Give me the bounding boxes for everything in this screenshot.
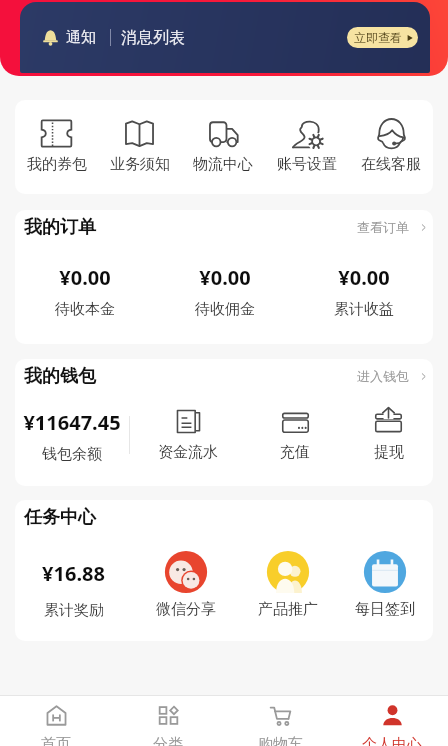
button[interactable]: 分类 bbox=[112, 696, 224, 746]
staticText: 我的钱包 bbox=[24, 365, 96, 388]
staticText: 查看订单 bbox=[357, 219, 409, 235]
staticText: 我的订单 bbox=[24, 216, 96, 239]
button[interactable]: 微信分享 bbox=[132, 548, 239, 619]
staticText: 待收本金 bbox=[55, 300, 115, 319]
button[interactable]: 账号设置 bbox=[265, 117, 349, 174]
staticText: 分类 bbox=[153, 735, 183, 746]
staticText: ¥16.88 bbox=[42, 560, 105, 587]
button[interactable]: 业务须知 bbox=[98, 117, 181, 174]
staticText: 任务中心 bbox=[24, 506, 96, 529]
staticText: 产品推广 bbox=[258, 600, 318, 619]
staticText: 账号设置 bbox=[277, 155, 337, 174]
staticText: 累计收益 bbox=[334, 300, 394, 319]
button[interactable]: ¥0.00 bbox=[15, 264, 155, 319]
staticText: ¥0.00 bbox=[59, 264, 111, 291]
button[interactable]: 立即查看 bbox=[347, 27, 418, 48]
button[interactable]: ¥11647.45 bbox=[15, 405, 129, 464]
button[interactable]: 物流中心 bbox=[181, 117, 265, 174]
staticText: 物流中心 bbox=[193, 155, 253, 174]
staticText: ¥11647.45 bbox=[23, 409, 121, 436]
staticText: 消息列表 bbox=[121, 28, 185, 48]
staticText: 个人中心 bbox=[362, 735, 422, 746]
staticText: 累计奖励 bbox=[44, 601, 104, 620]
staticText: 业务须知 bbox=[110, 155, 170, 174]
staticText: 充值 bbox=[280, 443, 310, 462]
button[interactable]: 产品推广 bbox=[239, 548, 337, 619]
staticText: 通知 bbox=[66, 28, 96, 47]
staticText: 进入钱包 bbox=[357, 368, 409, 384]
button[interactable]: 通知 bbox=[20, 2, 430, 73]
staticText: 微信分享 bbox=[156, 600, 216, 619]
button[interactable]: 资金流水 bbox=[130, 407, 246, 462]
button[interactable]: 个人中心 bbox=[336, 696, 448, 746]
staticText: 购物车 bbox=[258, 735, 303, 746]
button[interactable]: ¥0.00 bbox=[294, 264, 433, 319]
staticText: 待收佣金 bbox=[195, 300, 255, 319]
button[interactable]: 在线客服 bbox=[349, 117, 433, 174]
staticText: 立即查看 bbox=[354, 30, 402, 45]
button[interactable]: ¥0.00 bbox=[155, 264, 294, 319]
staticText: ¥0.00 bbox=[199, 264, 251, 291]
button[interactable]: 购物车 bbox=[224, 696, 336, 746]
button[interactable]: 提现 bbox=[344, 407, 433, 462]
staticText: 提现 bbox=[374, 443, 404, 462]
button[interactable]: 充值 bbox=[246, 407, 344, 462]
staticText: 首页 bbox=[41, 735, 71, 746]
button[interactable]: 每日签到 bbox=[337, 548, 433, 619]
staticText: 资金流水 bbox=[158, 443, 218, 462]
button[interactable]: 查看订单 bbox=[356, 219, 428, 235]
staticText: 钱包余额 bbox=[42, 445, 102, 464]
button[interactable]: 首页 bbox=[0, 696, 112, 746]
button[interactable]: ¥16.88 bbox=[15, 548, 132, 620]
staticText: 在线客服 bbox=[361, 155, 421, 174]
button[interactable]: 进入钱包 bbox=[356, 368, 428, 384]
button[interactable]: 我的券包 bbox=[15, 117, 98, 174]
staticText: 我的券包 bbox=[27, 155, 87, 174]
staticText: ¥0.00 bbox=[338, 264, 390, 291]
staticText: 每日签到 bbox=[355, 600, 415, 619]
